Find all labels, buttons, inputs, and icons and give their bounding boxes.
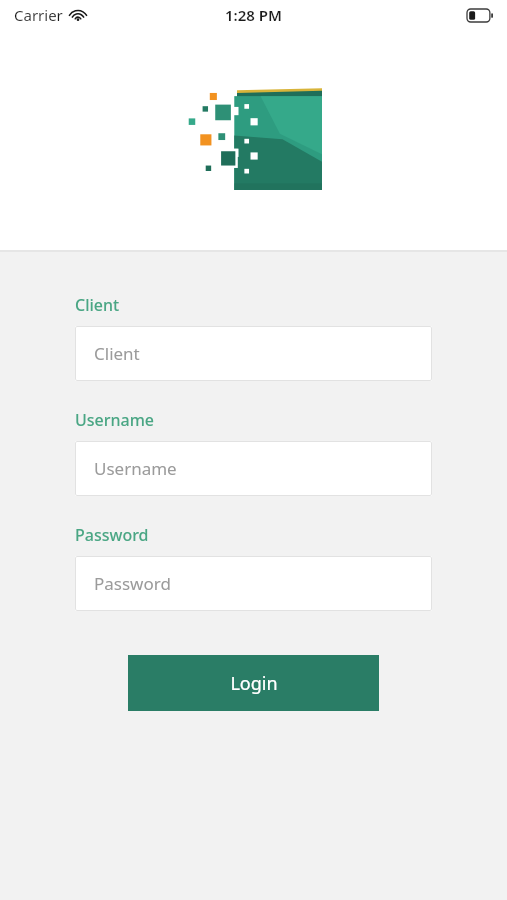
staticText: Client bbox=[94, 342, 140, 365]
staticText: Username bbox=[75, 409, 155, 431]
button[interactable]: Client bbox=[75, 326, 432, 381]
staticText: 1:28 PM bbox=[225, 5, 282, 25]
staticText: Login bbox=[230, 671, 278, 696]
button[interactable]: Username bbox=[75, 441, 432, 496]
button[interactable]: Password bbox=[75, 556, 432, 611]
button[interactable]: Login bbox=[128, 655, 379, 711]
staticText: Username bbox=[94, 457, 177, 480]
staticText: Password bbox=[94, 572, 171, 595]
staticText: Client bbox=[75, 294, 120, 316]
staticText: Carrier bbox=[14, 5, 63, 25]
staticText: Password bbox=[75, 524, 149, 546]
